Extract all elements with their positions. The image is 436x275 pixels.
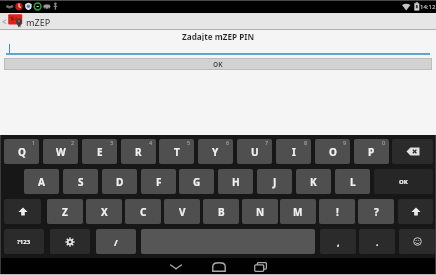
staticText: ! [336, 205, 339, 219]
button[interactable]: ? [358, 199, 394, 224]
button[interactable] [6, 42, 430, 57]
staticText: L [350, 175, 356, 189]
staticText: , [337, 236, 340, 248]
button[interactable]: S [63, 169, 98, 194]
staticText: K [310, 175, 317, 189]
staticText: 1 [32, 139, 36, 146]
staticText: ?123 [17, 238, 31, 246]
staticText: Q [18, 145, 26, 159]
staticText: V [179, 205, 186, 219]
staticText: 6 [226, 139, 230, 146]
staticText: T [174, 145, 180, 159]
staticText: P [368, 145, 375, 159]
staticText: 8 [304, 139, 308, 146]
staticText: ? [374, 205, 379, 219]
button[interactable] [244, 258, 276, 275]
staticText: G [193, 175, 201, 189]
button[interactable]: W [43, 139, 78, 164]
staticText: J [273, 175, 277, 189]
button[interactable]: / [96, 229, 136, 254]
button[interactable]: OK [4, 58, 432, 70]
staticText: OK [213, 60, 223, 69]
staticText: 4 [149, 139, 153, 146]
button[interactable]: R [121, 139, 156, 164]
button[interactable]: J [257, 169, 292, 194]
staticText: B [218, 205, 225, 219]
staticText: . [376, 236, 379, 248]
button[interactable]: , [320, 229, 356, 254]
button[interactable]: V [164, 199, 200, 224]
staticText: mZEP [26, 16, 51, 28]
staticText: OK [399, 178, 408, 186]
staticText: / [114, 236, 118, 248]
button[interactable] [398, 199, 433, 224]
staticText: X [101, 205, 108, 219]
button[interactable]: Z [47, 199, 83, 224]
staticText: M [293, 205, 303, 219]
staticText: W [56, 145, 66, 159]
button[interactable]: L [335, 169, 370, 194]
button[interactable]: U [237, 139, 272, 164]
button[interactable] [4, 199, 41, 224]
staticText: E [97, 145, 103, 159]
button[interactable] [160, 258, 192, 275]
button[interactable]: K [296, 169, 331, 194]
staticText: A [38, 175, 45, 189]
staticText: 0 [382, 139, 386, 146]
button[interactable]: H [218, 169, 253, 194]
staticText: 3 [110, 139, 114, 146]
button[interactable]: OK [374, 169, 433, 194]
staticText: 7 [265, 139, 269, 146]
button[interactable]: . [359, 229, 395, 254]
staticText: N [256, 205, 265, 219]
button[interactable]: E [82, 139, 117, 164]
staticText: U [251, 145, 259, 159]
button[interactable] [399, 229, 435, 254]
staticText: 2 [71, 139, 75, 146]
button[interactable]: T [159, 139, 194, 164]
staticText: I [292, 145, 296, 159]
button[interactable]: N [242, 199, 278, 224]
button[interactable]: I [276, 139, 311, 164]
button[interactable]: ?123 [4, 229, 44, 254]
staticText: Y [212, 145, 219, 159]
staticText: Zadajte mZEP PIN [182, 31, 255, 41]
button[interactable] [203, 258, 235, 275]
staticText: S [78, 175, 84, 189]
button[interactable]: O [315, 139, 350, 164]
staticText: O [329, 145, 337, 159]
staticText: 14:12 [420, 3, 436, 11]
button[interactable]: P [354, 139, 389, 164]
button[interactable] [392, 139, 433, 164]
button[interactable]: Y [198, 139, 233, 164]
button[interactable]: A [24, 169, 59, 194]
button[interactable] [50, 229, 90, 254]
staticText: D [116, 175, 124, 189]
button[interactable]: D [102, 169, 137, 194]
button[interactable] [6, 13, 66, 30]
staticText: 5 [187, 139, 191, 146]
button[interactable]: G [179, 169, 214, 194]
staticText: Z [62, 205, 68, 219]
staticText: F [156, 175, 162, 189]
button[interactable]: ! [319, 199, 355, 224]
button[interactable]: Q [4, 139, 39, 164]
button[interactable]: X [86, 199, 122, 224]
button[interactable]: B [203, 199, 239, 224]
button[interactable]: M [280, 199, 316, 224]
staticText: C [140, 205, 147, 219]
button[interactable]: F [141, 169, 176, 194]
staticText: R [135, 145, 142, 159]
staticText: H [232, 175, 240, 189]
button[interactable]: C [125, 199, 161, 224]
staticText: < [2, 16, 7, 27]
staticText: 9 [343, 139, 347, 146]
